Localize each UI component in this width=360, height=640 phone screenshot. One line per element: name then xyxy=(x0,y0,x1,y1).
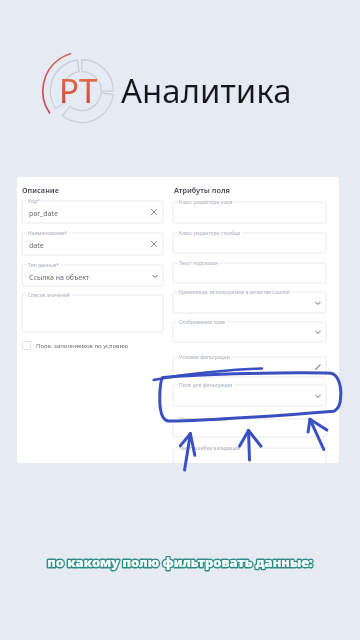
button[interactable]: Условия фильтрации xyxy=(173,357,326,377)
staticText: Текст ошибки валидации xyxy=(179,445,241,452)
staticText: Ссылка на объект xyxy=(29,273,90,283)
staticText: по какому полю фильтровать данные: xyxy=(47,553,313,571)
other: Раскрыть xyxy=(315,300,321,306)
staticText: Атрибуты поля xyxy=(174,185,230,195)
button[interactable]: Хранилище, используемое в качестве ссылк… xyxy=(173,292,326,313)
staticText: Описание xyxy=(22,185,59,195)
button[interactable]: Текст подсказки xyxy=(173,263,326,283)
staticText: Хранилище, используемое в качестве ссылк… xyxy=(179,289,290,296)
other: Раскрыть xyxy=(315,329,321,335)
button[interactable]: Отображение поле xyxy=(173,322,326,342)
other: Раскрыть xyxy=(152,273,158,279)
staticText: Класс редактора столбца xyxy=(179,230,241,237)
staticText: Поле, заполняемое по условию xyxy=(36,342,129,350)
button[interactable]: Текст ошибки валидации xyxy=(173,448,326,463)
button[interactable]: Тип данных* xyxy=(22,265,163,286)
other: Очистить xyxy=(151,241,157,247)
button[interactable]: Поле для фильтрации xyxy=(173,385,326,406)
staticText: Тип данных* xyxy=(28,262,60,269)
staticText: Условия валидации xyxy=(179,416,227,423)
staticText: Условия фильтрации xyxy=(179,354,230,361)
button[interactable]: Класс редактора столбца xyxy=(173,233,326,253)
button[interactable]: Код* xyxy=(22,201,163,223)
staticText: по какому полю фильтровать данные: xyxy=(47,553,313,571)
staticText: Текст подсказки xyxy=(179,260,218,267)
staticText: Отображение поле xyxy=(179,319,226,326)
button[interactable]: Поле, заполняемое по условию xyxy=(22,341,129,350)
other: Раскрыть xyxy=(315,393,321,399)
staticText: Код* xyxy=(28,198,40,205)
staticText: date xyxy=(29,241,44,251)
staticText: Аналитика xyxy=(121,68,292,113)
button[interactable]: Наименование* xyxy=(22,233,163,255)
staticText: PT xyxy=(59,68,98,113)
button[interactable]: Список значений xyxy=(22,295,163,332)
other: Изменить xyxy=(315,364,321,370)
staticText: Наименование* xyxy=(28,230,68,237)
other: Очистить xyxy=(151,209,157,215)
staticText: Класс редактора поля xyxy=(179,199,233,206)
staticText: Список значений xyxy=(28,292,70,299)
staticText: par_date xyxy=(29,209,58,219)
button[interactable]: Условия валидации xyxy=(173,419,326,437)
button[interactable]: Класс редактора поля xyxy=(173,202,326,223)
staticText: Поле для фильтрации xyxy=(179,382,233,389)
